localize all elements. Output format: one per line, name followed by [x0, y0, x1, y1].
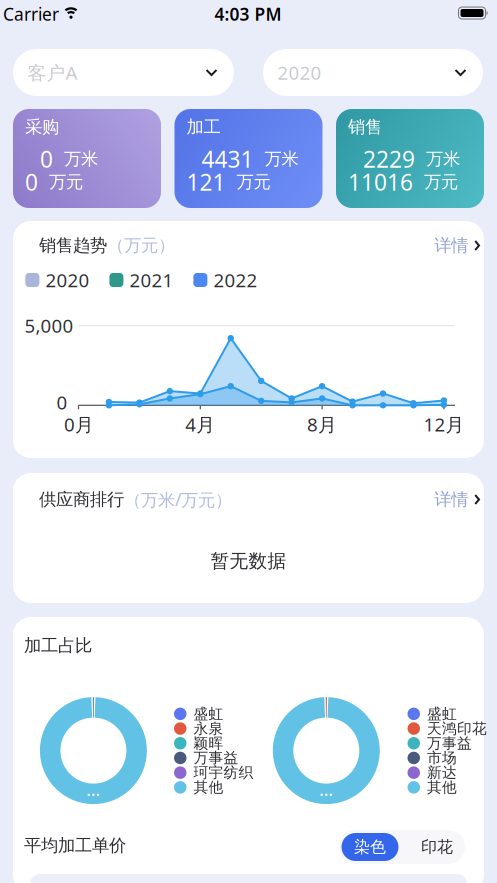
button[interactable]: 详情 [434, 489, 480, 510]
staticText: 万米 [64, 148, 98, 170]
staticText: 0 [25, 167, 38, 197]
staticText: 5,000 [24, 313, 73, 338]
staticText: 详情 [434, 235, 468, 256]
button[interactable]: 详情 [434, 235, 480, 256]
staticText: 121 [186, 167, 225, 197]
staticText: 12月 [423, 412, 464, 437]
staticText: 采购 [25, 116, 59, 138]
staticText: 其他 [427, 778, 457, 796]
button[interactable]: 客户A [13, 49, 234, 96]
staticText: 2020 [45, 268, 89, 292]
staticText: 详情 [434, 489, 468, 510]
staticText: 万元 [49, 171, 83, 193]
staticText: 4月 [185, 412, 215, 437]
staticText: 万元 [236, 171, 270, 193]
staticText: 其他 [193, 778, 223, 796]
staticText: 盛虹 [427, 705, 457, 723]
button[interactable]: 染色 [341, 833, 398, 861]
staticText: 加工占比 [24, 635, 92, 656]
staticText: 加工 [186, 116, 220, 138]
staticText: 万事益 [427, 734, 472, 752]
staticText: 平均加工单价 [24, 835, 126, 856]
staticText: Carrier [3, 2, 59, 25]
staticText: 2229 [363, 144, 415, 174]
staticText: 2020 [277, 60, 321, 85]
staticText: 印花 [421, 837, 453, 857]
staticText: 4:03 PM [214, 2, 281, 25]
staticText: 天鸿印花 [427, 719, 487, 737]
staticText: 颖晖 [193, 734, 223, 752]
staticText: 0 [56, 390, 67, 415]
staticText: 销售趋势 [39, 235, 107, 256]
staticText: 0 [40, 144, 53, 174]
staticText: 8月 [307, 412, 337, 437]
staticText: 11016 [348, 167, 413, 197]
staticText: 万米 [264, 148, 298, 170]
staticText: 染色 [354, 837, 386, 857]
staticText: （万米/万元） [124, 488, 232, 511]
staticText: 万元 [424, 171, 458, 193]
staticText: 珂宇纺织 [193, 764, 253, 782]
button[interactable]: 2020 [263, 49, 483, 96]
button[interactable]: 采购 [13, 109, 161, 208]
staticText: 市场 [427, 749, 457, 767]
button[interactable]: 销售 [336, 109, 484, 208]
staticText: 4431 [201, 144, 253, 174]
staticText: 2021 [129, 268, 173, 292]
staticText: 新达 [427, 764, 457, 782]
staticText: 暂无数据 [210, 549, 286, 572]
staticText: 客户A [27, 60, 77, 85]
staticText: 销售 [348, 116, 382, 138]
button[interactable]: 加工 [174, 109, 322, 208]
staticText: 0月 [64, 412, 94, 437]
staticText: 供应商排行 [39, 489, 124, 510]
staticText: 万米 [426, 148, 460, 170]
button[interactable]: 印花 [409, 833, 465, 861]
staticText: （万元） [107, 235, 175, 256]
staticText: 2022 [213, 268, 257, 292]
staticText: 盛虹 [193, 705, 223, 723]
staticText: 万事益 [193, 749, 238, 767]
staticText: 永泉 [193, 719, 223, 737]
